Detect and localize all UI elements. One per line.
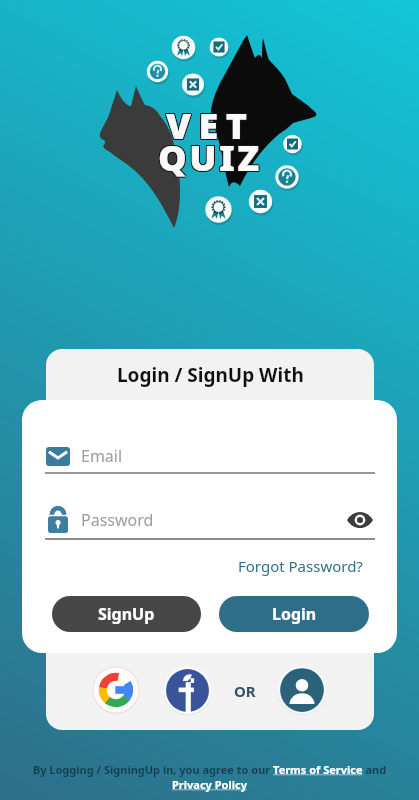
staticText: SignUp [98,603,155,625]
staticText: VET [165,102,254,151]
staticText: VET [166,102,255,151]
staticText: QUIZ [157,132,261,181]
staticText: VET [166,100,255,149]
staticText: Login [272,603,317,625]
button[interactable]: SignUp [52,596,201,632]
button[interactable]: OR [234,681,256,701]
staticText: Password [81,509,154,531]
button[interactable]: Sign in with Google [92,666,140,714]
staticText: QUIZ [159,133,263,182]
staticText: VET [165,101,254,150]
staticText: QUIZ [158,134,262,183]
staticText: Forgot Password? [238,556,363,576]
staticText: OR [234,681,256,701]
staticText: QUIZ [158,133,262,182]
staticText: VET [167,102,256,151]
staticText: VET [167,101,256,150]
button[interactable]: Show password [344,508,376,532]
button[interactable]: Sign in with Facebook [163,666,212,715]
button[interactable]: Sign in as guest [277,665,327,715]
staticText: By Logging / SigningUp in, you agree to … [14,762,405,792]
staticText: QUIZ [159,132,263,181]
staticText: Login / SignUp With [117,362,304,388]
staticText: QUIZ [157,134,261,183]
staticText: VET [167,100,256,149]
staticText: VET [165,100,254,149]
button[interactable]: Login [219,596,369,632]
staticText: QUIZ [157,133,261,182]
staticText: QUIZ [158,132,262,181]
staticText: Email [81,445,123,467]
staticText: QUIZ [159,134,263,183]
staticText: VET [166,101,255,150]
button[interactable]: Forgot Password? [234,553,367,579]
